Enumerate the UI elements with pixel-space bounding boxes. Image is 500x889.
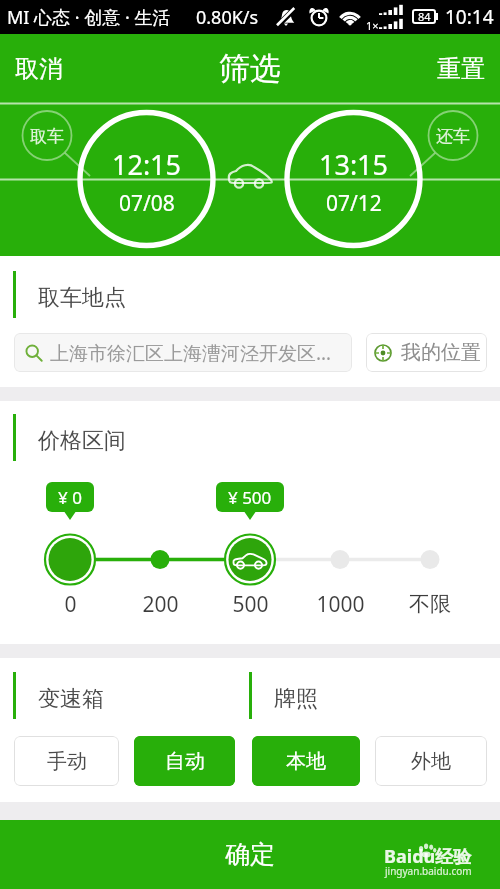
button[interactable]: 本地	[252, 736, 360, 786]
staticText: 200	[142, 590, 179, 619]
button[interactable]: 外地	[375, 736, 487, 786]
button[interactable]: 我的位置	[366, 333, 487, 372]
staticText: 牌照	[274, 685, 318, 713]
staticText: 自动	[165, 749, 205, 774]
staticText: 本地	[286, 749, 326, 774]
other: Silent mode	[277, 8, 295, 26]
staticText: 13:15	[319, 146, 389, 183]
button[interactable]: 取消	[0, 40, 78, 98]
staticText: 筛选	[219, 49, 281, 88]
staticText: 0.80K/s	[196, 5, 259, 30]
button[interactable]: 13:15	[294, 142, 414, 222]
staticText: 10:14	[445, 4, 494, 30]
button[interactable]: 自动	[134, 736, 235, 786]
staticText: 取消	[15, 54, 63, 84]
staticText: 价格区间	[38, 427, 126, 455]
staticText: 外地	[411, 749, 451, 774]
staticText: ¥ 0	[58, 486, 82, 509]
staticText: MI 心态 · 创意 · 生活	[7, 5, 171, 30]
staticText: 1×	[366, 18, 379, 33]
staticText: 0	[64, 590, 77, 619]
staticText: 重置	[437, 54, 485, 84]
staticText: 1000	[316, 590, 365, 619]
staticText: 500	[232, 590, 269, 619]
button[interactable]: 取车	[17, 121, 77, 151]
button[interactable]: 上海市徐汇区上海漕河泾开发区…	[14, 333, 352, 372]
staticText: 还车	[436, 126, 470, 147]
staticText: 07/12	[326, 189, 382, 218]
staticText: 取车	[30, 126, 64, 147]
button[interactable]: 还车	[423, 121, 483, 151]
button[interactable]: 确定	[0, 820, 500, 889]
other: Alarm	[308, 6, 330, 28]
staticText: 不限	[409, 591, 451, 617]
staticText: 变速箱	[38, 685, 104, 713]
staticText: jingyan.baidu.com	[385, 864, 472, 878]
button[interactable]: 重置	[422, 40, 500, 98]
staticText: 手动	[47, 749, 87, 774]
staticText: 84	[418, 9, 431, 24]
staticText: ¥ 500	[228, 486, 272, 509]
staticText: 12:15	[112, 146, 182, 183]
staticText: 我的位置	[401, 340, 481, 365]
staticText: Baidu经验	[384, 844, 472, 869]
button[interactable]: 手动	[14, 736, 119, 786]
staticText: 07/08	[119, 189, 175, 218]
staticText: 取车地点	[38, 284, 126, 312]
staticText: 上海市徐汇区上海漕河泾开发区…	[50, 340, 332, 366]
button[interactable]: 12:15	[87, 142, 207, 222]
staticText: 确定	[225, 839, 275, 870]
other: Wi-Fi	[338, 8, 362, 26]
